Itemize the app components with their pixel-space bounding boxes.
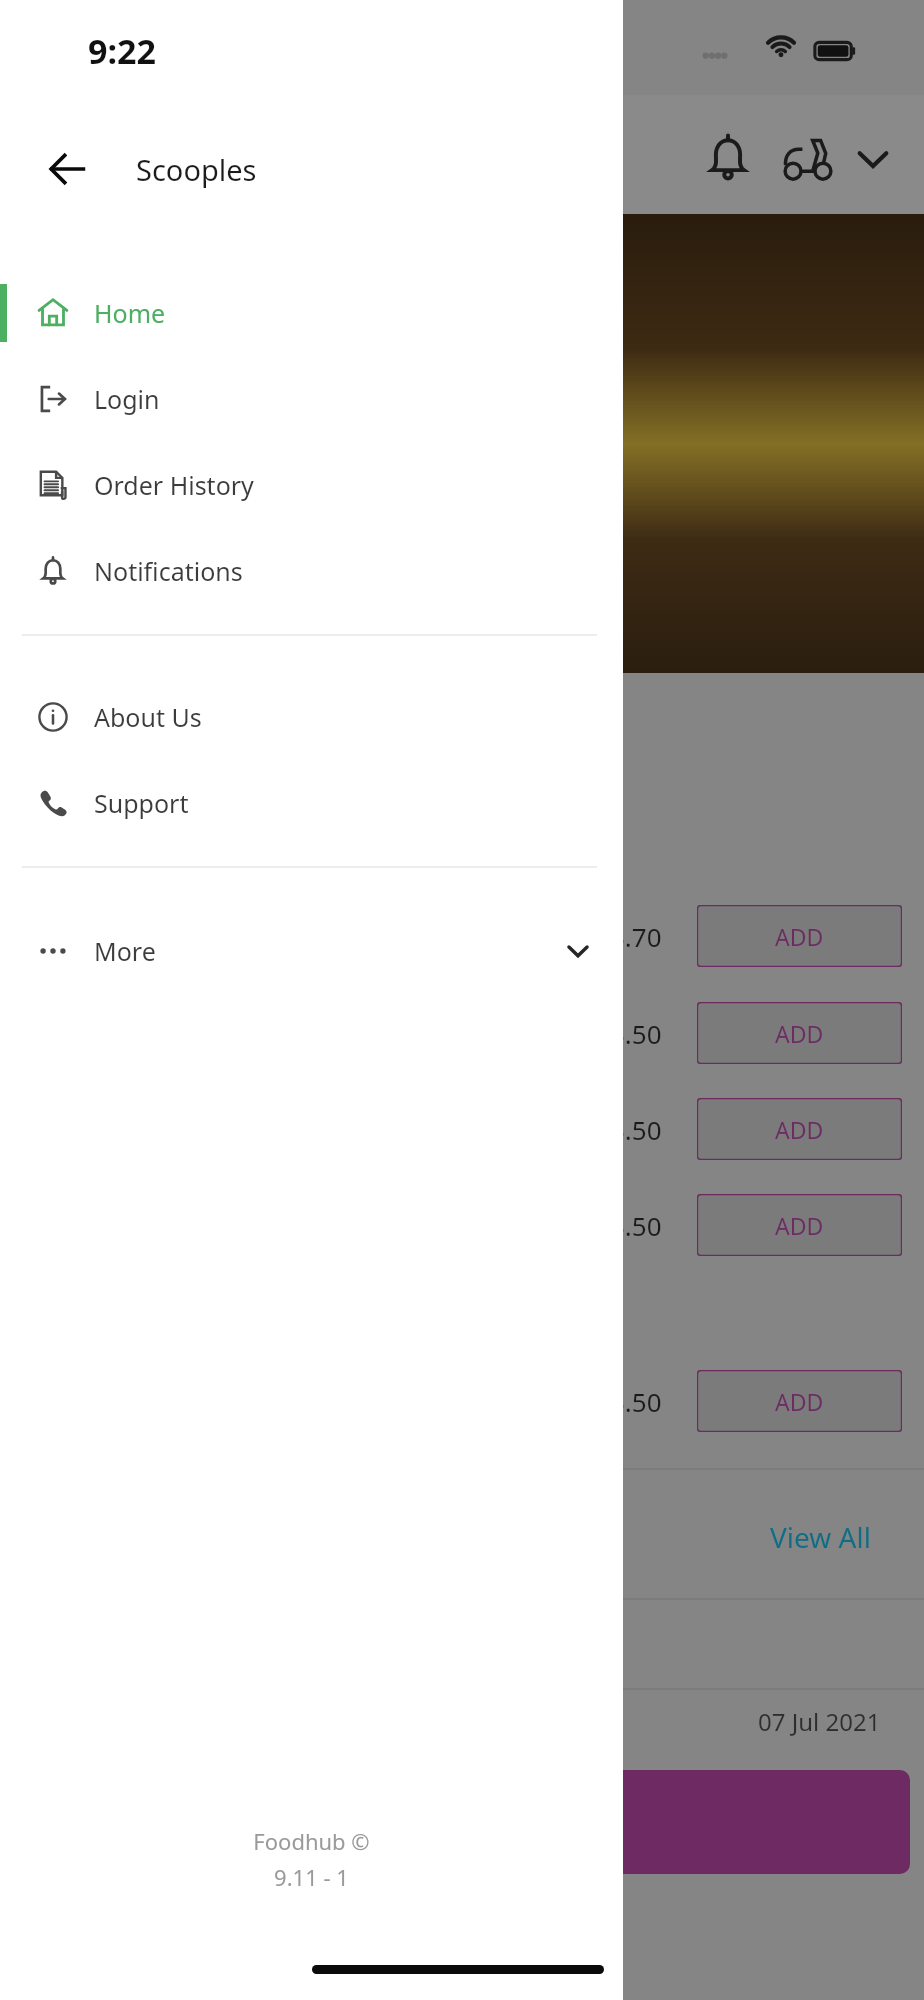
button[interactable]: ADD (697, 905, 902, 967)
staticText: 9:22 (88, 28, 156, 74)
button[interactable]: Support (0, 760, 623, 846)
button[interactable]: Expand (848, 134, 898, 184)
staticText: About Us (94, 700, 202, 734)
button[interactable]: Notifications (0, 528, 623, 614)
staticText: 07 Jul 2021 (758, 1705, 881, 1738)
staticText: Home (94, 296, 166, 330)
staticText: ADD (775, 1210, 824, 1241)
button[interactable]: About Us (0, 674, 623, 760)
staticText: Order History (94, 468, 254, 502)
button[interactable]: ADD (697, 1098, 902, 1160)
staticText: View All (770, 1518, 871, 1556)
button[interactable]: View All (770, 1518, 871, 1556)
button[interactable] (570, 1770, 910, 1874)
staticText: 9.11 - 1 (274, 1862, 349, 1892)
staticText: ADD (775, 921, 824, 952)
button[interactable]: ADD (697, 1370, 902, 1432)
button[interactable]: Notifications (700, 130, 756, 186)
staticText: Scooples (136, 150, 257, 189)
staticText: More (94, 934, 156, 968)
staticText: Foodhub © (253, 1826, 370, 1856)
staticText: 3.50 (610, 1384, 662, 1419)
button[interactable]: More (0, 908, 623, 994)
button[interactable]: Delivery (780, 132, 836, 188)
button[interactable]: ADD (697, 1194, 902, 1256)
staticText: ADD (775, 1386, 824, 1417)
staticText: 3.50 (610, 1016, 662, 1051)
staticText: ADD (775, 1018, 824, 1049)
button[interactable]: Login (0, 356, 623, 442)
staticText: Login (94, 382, 160, 416)
button[interactable]: Home (0, 270, 623, 356)
staticText: Support (94, 786, 189, 820)
staticText: 3.50 (610, 1112, 662, 1147)
button[interactable]: Order History (0, 442, 623, 528)
staticText: 3.50 (610, 1208, 662, 1243)
button[interactable]: Back (42, 143, 94, 195)
staticText: ADD (775, 1114, 824, 1145)
button[interactable]: ADD (697, 1002, 902, 1064)
staticText: 3.70 (610, 919, 662, 954)
staticText: Notifications (94, 554, 243, 588)
